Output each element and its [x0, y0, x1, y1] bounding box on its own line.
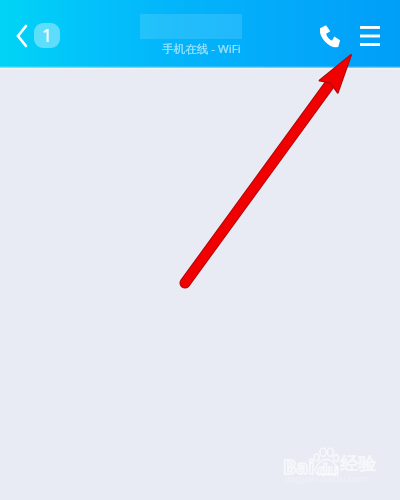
staticText: jingyan.baidu.com: [285, 472, 368, 485]
button[interactable]: 手机在线 - WiFi: [120, 11, 283, 58]
button[interactable]: Menu: [353, 19, 387, 53]
staticText: 手机在线 - WiFi: [162, 41, 241, 57]
staticText: Bai: [283, 453, 315, 480]
staticText: 经验: [340, 453, 376, 476]
staticText: du: [317, 459, 339, 476]
button[interactable]: Back: [12, 15, 66, 56]
button[interactable]: Call: [312, 19, 346, 53]
staticText: 1: [42, 23, 53, 48]
